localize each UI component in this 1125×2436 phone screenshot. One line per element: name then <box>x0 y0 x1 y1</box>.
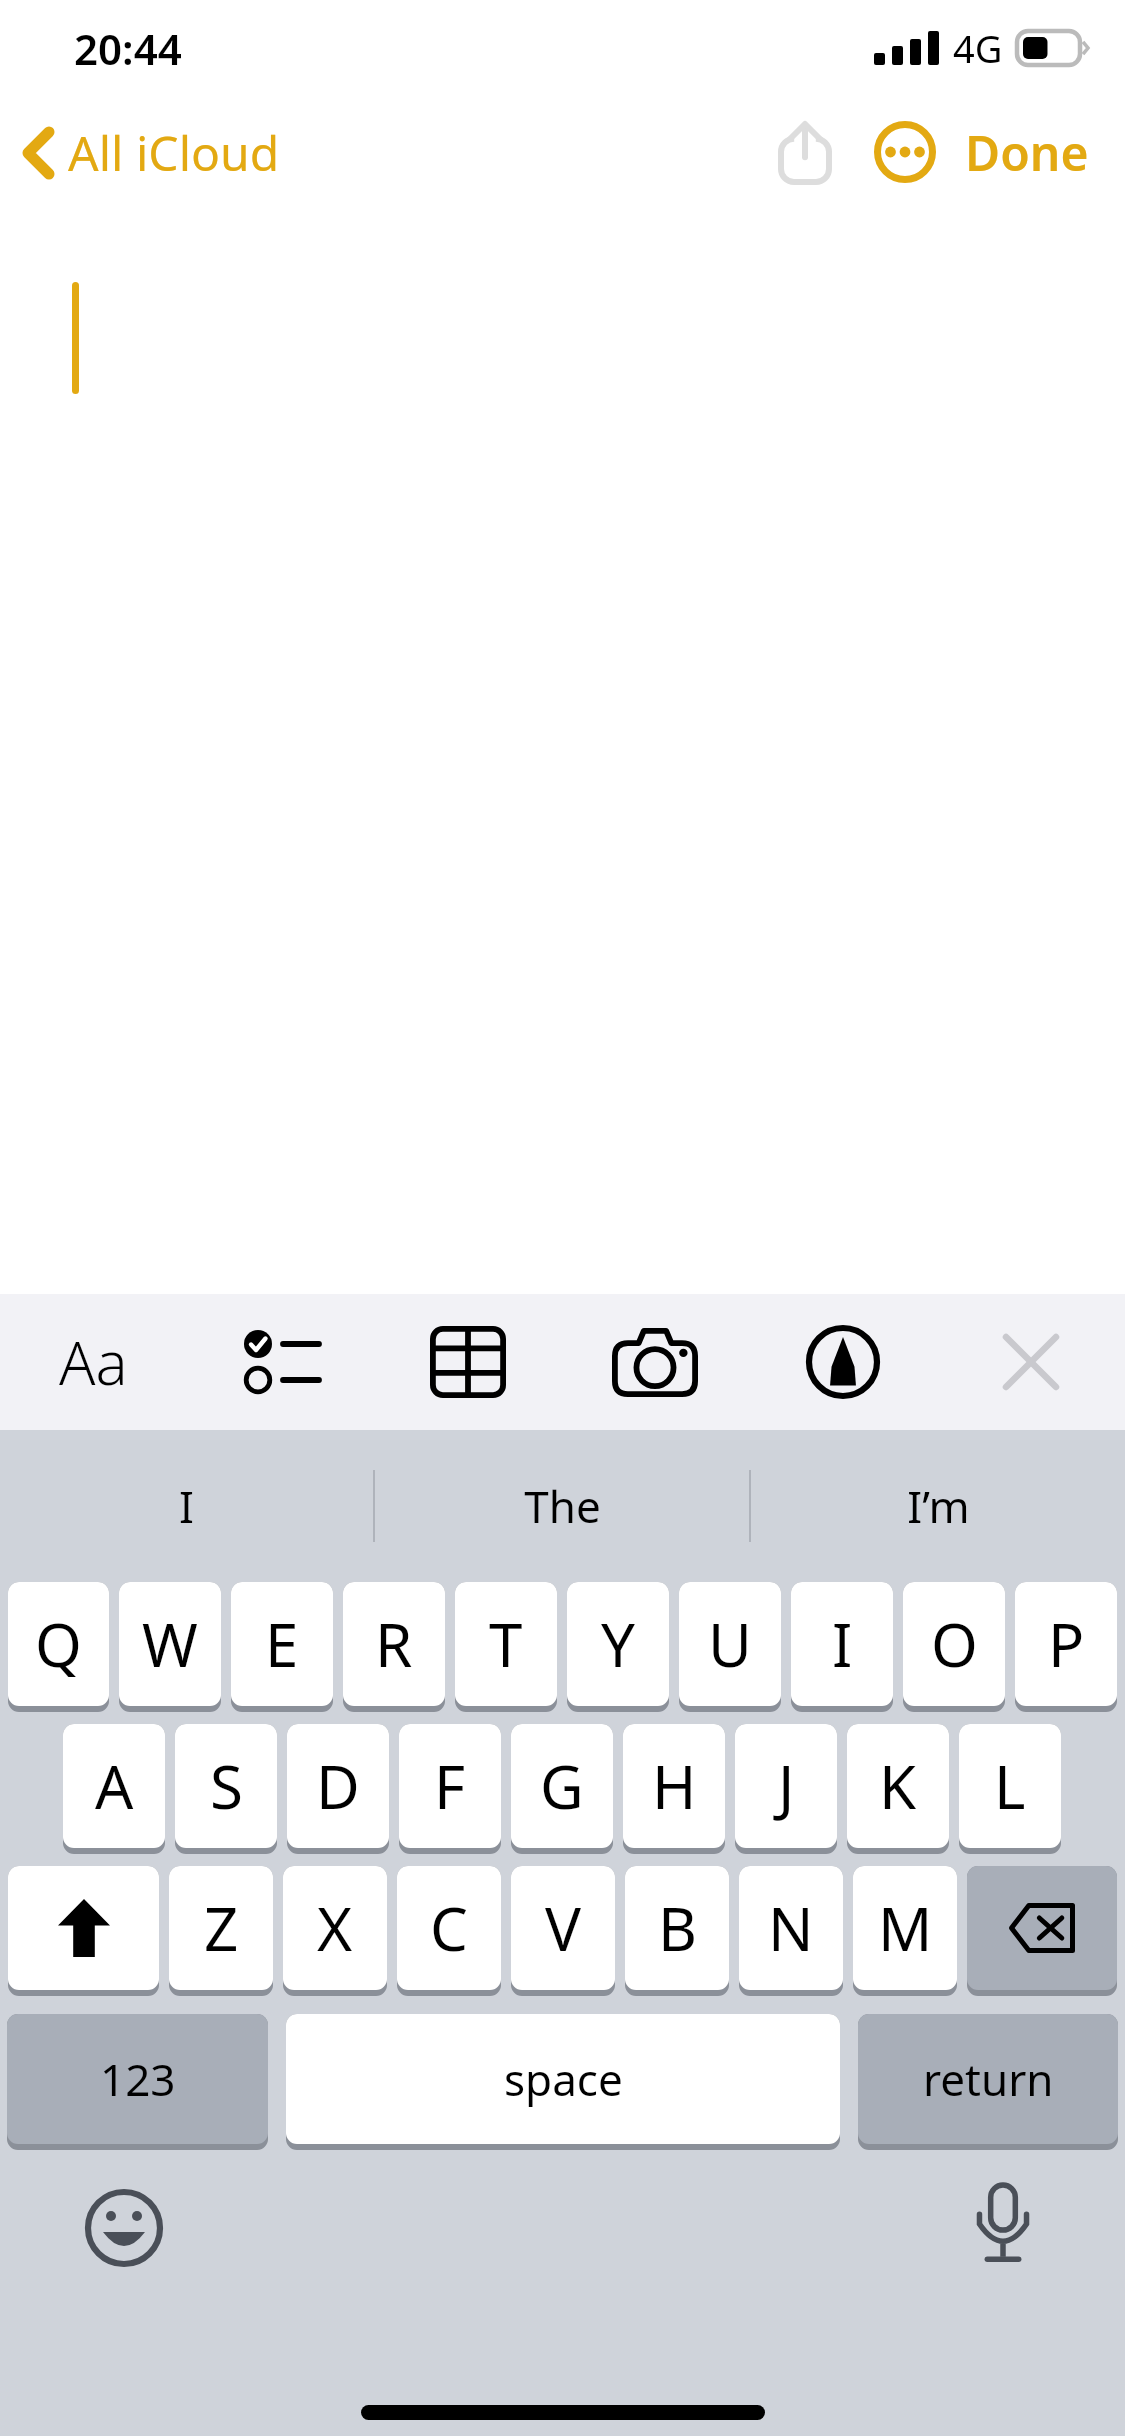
button[interactable]: Shift <box>8 1866 159 1990</box>
staticText: O <box>931 1603 978 1685</box>
staticText: R <box>375 1603 413 1685</box>
staticText: The <box>524 1476 601 1536</box>
button[interactable]: H <box>623 1724 725 1848</box>
button[interactable]: Hide keyboard <box>937 1294 1125 1430</box>
button[interactable]: Done <box>955 104 1099 201</box>
button[interactable]: Share <box>755 102 855 202</box>
button[interactable]: L <box>959 1724 1061 1848</box>
staticText: I’m <box>907 1476 970 1536</box>
button[interactable]: O <box>903 1582 1005 1706</box>
button[interactable]: Backspace <box>967 1866 1117 1990</box>
staticText: H <box>652 1745 697 1827</box>
button[interactable]: Text format <box>0 1294 187 1430</box>
button[interactable]: C <box>397 1866 501 1990</box>
button[interactable]: X <box>283 1866 387 1990</box>
staticText: W <box>142 1603 198 1685</box>
staticText: S <box>210 1745 243 1827</box>
staticText: B <box>658 1887 697 1969</box>
button[interactable]: R <box>343 1582 445 1706</box>
button[interactable]: W <box>119 1582 221 1706</box>
staticText: L <box>994 1745 1026 1827</box>
button[interactable]: S <box>175 1724 277 1848</box>
staticText: M <box>878 1887 933 1969</box>
staticText: Aa <box>59 1321 128 1403</box>
staticText: N <box>768 1887 814 1969</box>
staticText: E <box>265 1603 299 1685</box>
button[interactable]: F <box>399 1724 501 1848</box>
button[interactable]: All iCloud <box>0 110 294 195</box>
button[interactable]: P <box>1015 1582 1117 1706</box>
staticText: F <box>434 1745 466 1827</box>
button[interactable]: Markup <box>749 1294 937 1430</box>
staticText: A <box>95 1745 134 1827</box>
button[interactable]: I’m <box>751 1430 1125 1582</box>
staticText: I <box>832 1603 853 1685</box>
staticText: All iCloud <box>68 120 280 185</box>
button[interactable]: M <box>853 1866 957 1990</box>
staticText: D <box>316 1745 360 1827</box>
button[interactable]: U <box>679 1582 781 1706</box>
button[interactable]: B <box>625 1866 729 1990</box>
button[interactable]: return <box>858 2014 1118 2144</box>
staticText: U <box>708 1603 752 1685</box>
button[interactable]: T <box>455 1582 557 1706</box>
staticText: space <box>504 2049 623 2109</box>
staticText: J <box>778 1745 795 1827</box>
button[interactable]: 123 <box>7 2014 268 2144</box>
button[interactable]: A <box>63 1724 165 1848</box>
staticText: 123 <box>100 2049 176 2109</box>
button[interactable]: Y <box>567 1582 669 1706</box>
staticText: V <box>545 1887 581 1969</box>
staticText: Y <box>601 1603 635 1685</box>
button[interactable]: The <box>375 1430 749 1582</box>
button[interactable]: D <box>287 1724 389 1848</box>
staticText: C <box>430 1887 468 1969</box>
button[interactable]: Camera <box>561 1294 749 1430</box>
staticText: 4G <box>953 22 1003 74</box>
button[interactable]: Checklist <box>187 1294 374 1430</box>
staticText: Z <box>204 1887 239 1969</box>
button[interactable]: Dictation <box>955 2176 1051 2272</box>
button[interactable] <box>0 208 1125 1294</box>
staticText: T <box>489 1603 523 1685</box>
button[interactable]: I <box>791 1582 893 1706</box>
button[interactable]: I <box>0 1430 373 1582</box>
button[interactable]: V <box>511 1866 615 1990</box>
button[interactable]: K <box>847 1724 949 1848</box>
button[interactable]: N <box>739 1866 843 1990</box>
staticText: Done <box>965 120 1089 185</box>
button[interactable]: Q <box>8 1582 109 1706</box>
staticText: G <box>540 1745 584 1827</box>
button[interactable]: More options <box>855 102 955 202</box>
button[interactable]: G <box>511 1724 613 1848</box>
staticText: X <box>317 1887 353 1969</box>
button[interactable]: space <box>286 2014 840 2144</box>
button[interactable]: Table <box>374 1294 561 1430</box>
staticText: Q <box>35 1603 82 1685</box>
button[interactable]: E <box>231 1582 333 1706</box>
staticText: P <box>1048 1603 1085 1685</box>
button[interactable]: Emoji keyboard <box>76 2180 172 2276</box>
staticText: K <box>879 1745 917 1827</box>
button[interactable]: J <box>735 1724 837 1848</box>
button[interactable]: Z <box>169 1866 273 1990</box>
staticText: return <box>923 2049 1054 2109</box>
staticText: I <box>179 1476 194 1536</box>
staticText: 20:44 <box>74 20 182 77</box>
